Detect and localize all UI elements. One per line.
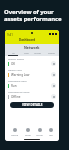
other: Stats bbox=[26, 128, 30, 132]
staticText: 9:41 bbox=[7, 33, 13, 37]
other: Alerts bbox=[38, 128, 42, 132]
staticText: Network bbox=[24, 45, 40, 50]
button[interactable]: Alarm bbox=[33, 51, 43, 56]
staticText: All bbox=[12, 51, 15, 54]
button[interactable]: Home bbox=[11, 128, 19, 136]
staticText: Operational Mode bbox=[8, 90, 30, 93]
staticText: Overview of your assets performance bbox=[4, 8, 62, 22]
staticText: Stats bbox=[25, 133, 31, 136]
staticText: Me bbox=[49, 133, 53, 136]
staticText: Other bbox=[48, 51, 55, 54]
button[interactable]: All bbox=[8, 51, 18, 56]
staticText: Sensor Status bbox=[8, 57, 25, 60]
button[interactable]: Live bbox=[21, 51, 31, 56]
button[interactable]: Sensor Status bbox=[5, 56, 59, 67]
staticText: OK bbox=[11, 62, 16, 66]
staticText: Live bbox=[24, 51, 29, 54]
button[interactable]: Me bbox=[49, 128, 53, 136]
button[interactable]: Operating State bbox=[5, 78, 59, 89]
button[interactable]: Other bbox=[46, 51, 56, 56]
button[interactable]: Device Alert bbox=[5, 67, 59, 78]
staticText: Operating State bbox=[8, 79, 27, 82]
staticText: Alarm bbox=[34, 51, 42, 54]
other: Home bbox=[13, 128, 17, 132]
other: Me bbox=[49, 128, 53, 132]
staticText: Dashboard bbox=[19, 38, 36, 42]
button[interactable]: Alerts bbox=[36, 128, 43, 136]
staticText: VIEW DETAILS bbox=[22, 103, 43, 107]
staticText: Home bbox=[11, 133, 19, 136]
staticText: Device Alert bbox=[8, 68, 22, 71]
staticText: Run bbox=[11, 84, 17, 88]
button[interactable]: Stats bbox=[25, 128, 31, 136]
staticText: Warning Low bbox=[11, 73, 30, 77]
staticText: Offline bbox=[11, 95, 21, 99]
staticText: Alerts bbox=[36, 133, 43, 136]
button[interactable]: VIEW DETAILS bbox=[10, 102, 54, 108]
button[interactable]: Operational Mode bbox=[5, 89, 59, 100]
